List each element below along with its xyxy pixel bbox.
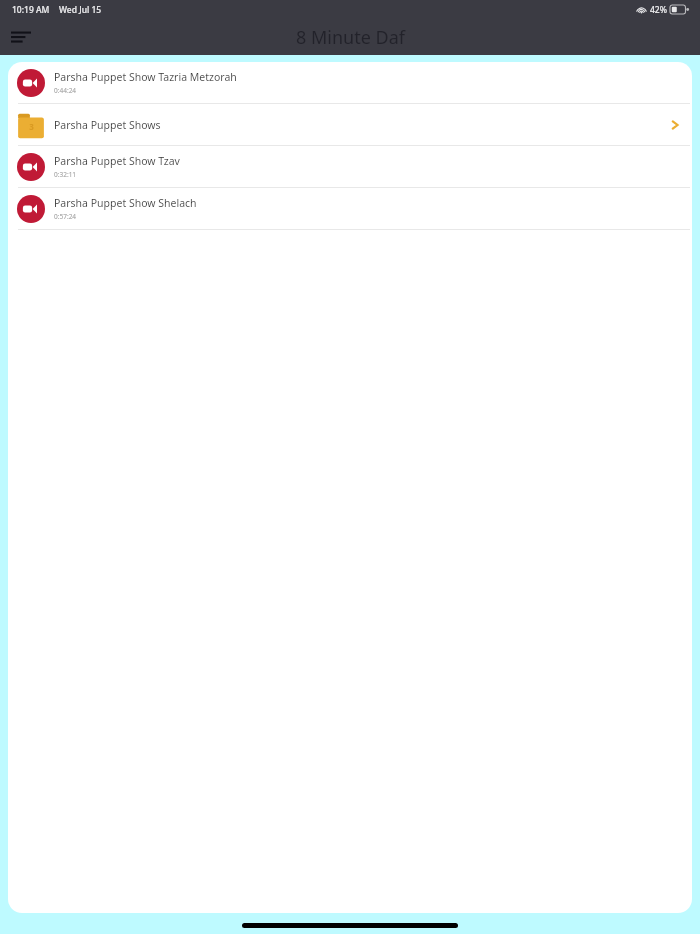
staticText: 8 Minute Daf bbox=[296, 25, 405, 50]
staticText: 3 bbox=[29, 121, 34, 132]
button[interactable]: Parsha Puppet Show Tzav bbox=[8, 146, 692, 187]
staticText: 0:57:24 bbox=[54, 212, 77, 221]
button[interactable]: Parsha Puppet Show Shelach bbox=[8, 188, 692, 229]
button[interactable]: Menu bbox=[6, 21, 36, 51]
staticText: Wed Jul 15 bbox=[59, 4, 102, 16]
staticText: 0:44:24 bbox=[54, 86, 77, 95]
staticText: 10:19 AM bbox=[12, 4, 50, 16]
button[interactable]: Parsha Puppet Show Tazria Metzorah bbox=[8, 62, 692, 103]
staticText: 42% bbox=[650, 4, 667, 16]
staticText: Parsha Puppet Show Tazria Metzorah bbox=[54, 70, 237, 84]
button[interactable]: 3 bbox=[8, 104, 692, 145]
staticText: Parsha Puppet Show Tzav bbox=[54, 154, 180, 168]
staticText: 0:32:11 bbox=[54, 170, 77, 179]
staticText: Parsha Puppet Show Shelach bbox=[54, 196, 197, 210]
staticText: Parsha Puppet Shows bbox=[54, 118, 668, 132]
